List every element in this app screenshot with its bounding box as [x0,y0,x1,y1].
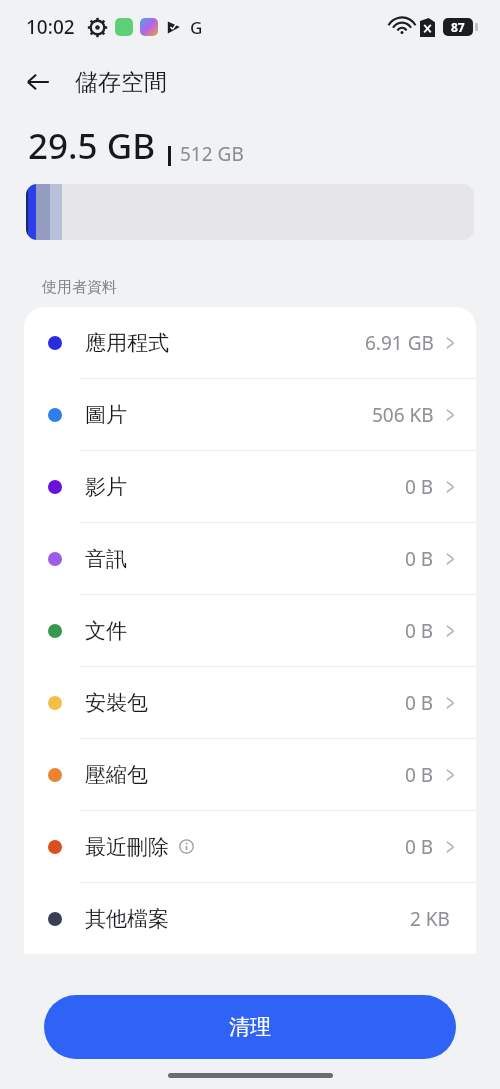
staticText: 2 KB [410,906,450,932]
staticText: 0 B [405,618,434,644]
staticText: 506 KB [372,402,434,428]
button[interactable]: 文件 [24,595,476,666]
button[interactable]: 安裝包 [24,667,476,738]
staticText: 壓縮包 [85,762,148,788]
staticText: 87 [451,19,465,35]
staticText: 0 B [405,546,434,572]
staticText: 0 B [405,762,434,788]
button[interactable]: 壓縮包 [24,739,476,810]
button[interactable]: 其他檔案 [24,883,476,954]
staticText: 影片 [85,474,127,500]
button[interactable]: 清理 [44,995,456,1059]
button[interactable]: 圖片 [24,379,476,450]
staticText: 其他檔案 [85,906,169,932]
staticText: 0 B [405,690,434,716]
button[interactable]: 應用程式 [24,307,476,378]
staticText: 圖片 [85,402,127,428]
staticText: 文件 [85,618,127,644]
staticText: 音訊 [85,546,127,572]
button[interactable]: Back [16,60,60,104]
staticText: 應用程式 [85,330,169,356]
staticText: 0 B [405,474,434,500]
button[interactable]: 最近刪除 [24,811,476,882]
staticText: 儲存空間 [75,68,167,97]
staticText: 10:02 [26,14,75,40]
staticText: 最近刪除 [85,834,169,860]
button[interactable]: 音訊 [24,523,476,594]
staticText: 清理 [229,1014,271,1040]
button[interactable]: 影片 [24,451,476,522]
staticText: 安裝包 [85,690,148,716]
staticText: G [190,16,203,39]
staticText: 使用者資料 [42,278,117,297]
staticText: 6.91 GB [365,330,434,356]
staticText: 0 B [405,834,434,860]
staticText: 512 GB [180,141,244,167]
staticText: 29.5 GB [28,122,156,170]
